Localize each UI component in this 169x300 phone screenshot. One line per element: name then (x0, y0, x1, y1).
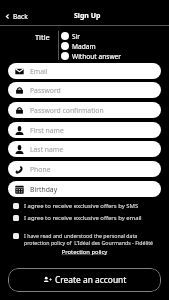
button[interactable]: I agree to receive exclusive offers by e… (13, 214, 169, 222)
button[interactable]: Create an account (8, 268, 161, 292)
staticText: Password confirmation (30, 106, 104, 115)
staticText: Without answer (72, 52, 122, 61)
staticText: protection policy of L'Idéal des Gourman… (24, 239, 153, 246)
staticText: Back (13, 12, 28, 21)
staticText: I have read and understood the personal … (24, 232, 138, 239)
staticText: Email (30, 67, 48, 76)
button[interactable]: Birthday (8, 181, 161, 197)
staticText: Title (35, 32, 50, 42)
button[interactable]: Protection policy (0, 248, 169, 256)
staticText: Sign Up (74, 11, 101, 21)
button[interactable]: Sir (61, 31, 81, 41)
staticText: I agree to receive exclusive offers by e… (24, 214, 142, 222)
button[interactable]: First name (8, 122, 161, 138)
button[interactable]: Back (4, 12, 28, 21)
staticText: Phone (30, 165, 51, 174)
button[interactable]: Password confirmation (8, 102, 161, 118)
button[interactable]: Last name (8, 141, 161, 157)
button[interactable]: I agree to receive exclusive offers by S… (13, 202, 169, 210)
staticText: Create an account (55, 274, 127, 285)
staticText: Sir (72, 32, 81, 41)
staticText: First name (30, 126, 64, 135)
staticText: Password (30, 86, 61, 95)
button[interactable]: Madam (61, 41, 96, 51)
staticText: I agree to receive exclusive offers by S… (24, 202, 139, 210)
staticText: Birthday (30, 185, 58, 194)
button[interactable]: Without answer (61, 51, 122, 61)
staticText: Last name (30, 145, 64, 154)
button[interactable]: I have read and understood the personal … (13, 232, 169, 246)
button[interactable]: Phone (8, 161, 161, 177)
staticText: Madam (72, 42, 96, 51)
button[interactable]: Email (8, 63, 161, 79)
button[interactable]: Password (8, 82, 161, 98)
